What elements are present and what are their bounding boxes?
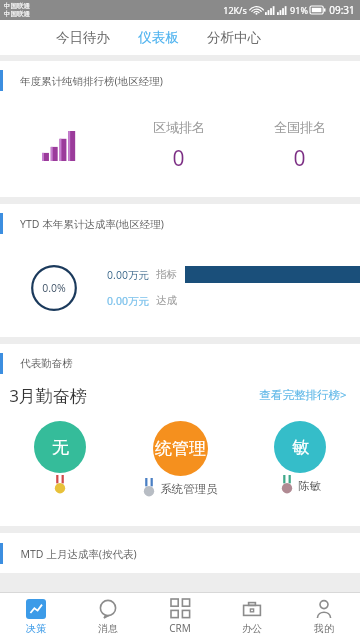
button[interactable]: 敏: [240, 421, 360, 497]
staticText: 我的: [314, 622, 334, 635]
staticText: 查看完整排行榜>: [259, 387, 347, 403]
button[interactable]: 今日待办: [56, 25, 110, 50]
staticText: 区域排名: [153, 119, 205, 135]
button[interactable]: 我的: [288, 593, 360, 640]
staticText: 指标: [156, 268, 177, 281]
button[interactable]: YTD 本年累计达成率(地区经理): [0, 204, 360, 337]
button[interactable]: 无: [0, 421, 120, 497]
button[interactable]: CRM: [144, 593, 216, 640]
staticText: 分析中心: [207, 29, 261, 46]
staticText: YTD 本年累计达成率(地区经理): [20, 217, 164, 231]
staticText: 代表勤奋榜: [20, 357, 73, 370]
staticText: 仪表板: [138, 29, 179, 46]
staticText: 消息: [98, 622, 118, 635]
staticText: 陈敏: [298, 479, 321, 493]
staticText: 办公: [242, 622, 262, 635]
staticText: MTD 上月达成率(按代表): [20, 547, 137, 561]
staticText: 09:31: [329, 3, 355, 17]
staticText: 统管理: [155, 438, 206, 459]
button[interactable]: 分析中心: [207, 25, 261, 50]
staticText: 0.0%: [42, 281, 66, 295]
staticText: 敏: [292, 437, 309, 458]
staticText: 0.00万元: [107, 294, 149, 308]
staticText: CRM: [169, 621, 191, 635]
staticText: 决策: [26, 622, 46, 635]
staticText: 0: [172, 144, 185, 173]
staticText: 年度累计纯销排行榜(地区经理): [20, 74, 163, 88]
staticText: 12K/s: [223, 4, 247, 16]
staticText: 中国联通: [4, 10, 30, 18]
button[interactable]: 年度累计纯销排行榜(地区经理): [0, 61, 360, 197]
staticText: 0: [293, 144, 306, 173]
button[interactable]: 查看完整排行榜>: [255, 383, 351, 407]
staticText: 全国排名: [274, 119, 326, 135]
staticText: 3月勤奋榜: [9, 384, 87, 407]
button[interactable]: 决策: [0, 593, 72, 640]
button[interactable]: 消息: [72, 593, 144, 640]
button[interactable]: 仪表板: [138, 25, 179, 50]
staticText: 今日待办: [56, 29, 110, 46]
staticText: 达成: [156, 294, 177, 307]
staticText: 0.00万元: [107, 268, 149, 282]
staticText: 系统管理员: [160, 482, 218, 496]
button[interactable]: 统管理: [120, 421, 240, 500]
button[interactable]: 办公: [216, 593, 288, 640]
staticText: 无: [52, 437, 69, 458]
staticText: 中国联通: [4, 2, 30, 10]
staticText: 91%: [290, 4, 308, 16]
